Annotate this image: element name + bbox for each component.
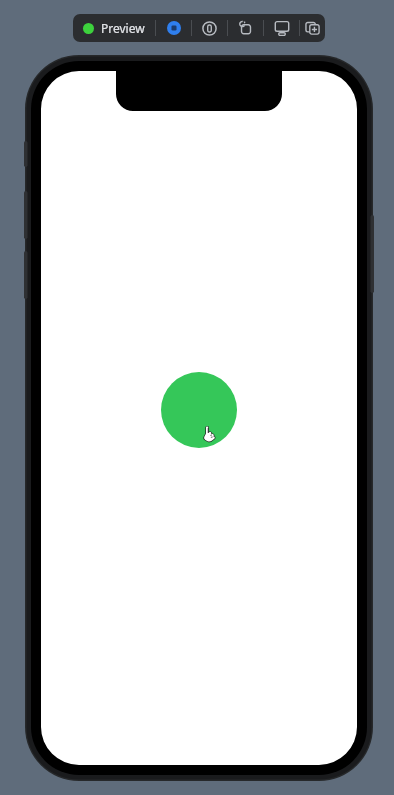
button[interactable]: Add preview: [300, 14, 325, 42]
button[interactable]: Green action button: [161, 372, 237, 448]
button[interactable]: Preview: [73, 14, 155, 42]
button[interactable]: Select device: [264, 14, 299, 42]
staticText: Preview: [101, 20, 145, 36]
button[interactable]: Interactive preview: [156, 14, 191, 42]
button[interactable]: Rotate preview: [228, 14, 263, 42]
button[interactable]: Run preview on device: [192, 14, 227, 42]
